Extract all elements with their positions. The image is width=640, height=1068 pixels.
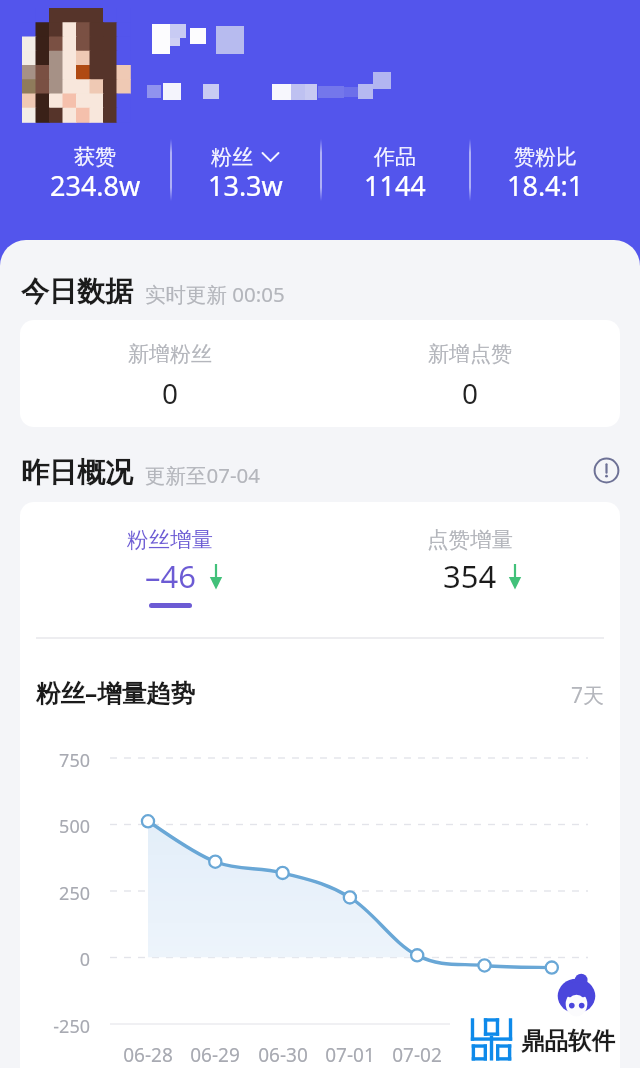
staticText: 500 [20,814,90,839]
staticText: 07-01 [316,1042,384,1068]
staticText: 18.4:1 [507,167,584,204]
button[interactable]: 作品 [320,144,470,207]
staticText: 赞粉比 [514,144,577,170]
staticText: 07-03 [451,1042,519,1068]
staticText: 粉丝增量 [127,526,213,553]
staticText: 06-28 [114,1042,182,1068]
staticText: –46 [145,555,196,597]
button[interactable]: 点赞增量 [320,526,620,603]
staticText: 鼎品软件 [521,1026,615,1056]
staticText: -250 [20,1014,90,1039]
staticText: 作品 [374,144,416,170]
staticText: 新增点赞 [428,341,512,367]
staticText: 354 [443,555,497,597]
staticText: 13.3w [208,167,283,204]
staticText: 昨日概况 [21,455,133,490]
staticText: 今日数据 [21,274,133,309]
staticText: 点赞增量 [427,526,513,553]
button[interactable]: 说明 [590,454,622,486]
staticText: 0 [20,947,90,972]
button[interactable]: 粉丝增量 [20,526,320,608]
staticText: 7天 [571,681,605,710]
staticText: 06-30 [249,1042,317,1068]
staticText: 粉丝 [211,144,253,170]
button[interactable]: 赞粉比 [470,144,620,207]
staticText: 06-29 [181,1042,249,1068]
staticText: 250 [20,881,90,906]
button[interactable]: 新增粉丝 [20,320,620,427]
staticText: 0 [462,374,479,412]
staticText: 更新至07-04 [145,461,261,489]
staticText: 实时更新 00:05 [145,280,285,308]
staticText: 750 [20,748,90,773]
button[interactable]: 粉丝 [170,144,320,207]
staticText: 07-04 [518,1042,586,1068]
staticText: 获赞 [74,144,116,170]
staticText: 1144 [364,167,426,204]
staticText: 新增粉丝 [128,341,212,367]
staticText: 粉丝–增量趋势 [36,676,196,709]
staticText: 234.8w [50,167,141,204]
button[interactable]: 获赞 [20,144,170,207]
staticText: 0 [162,374,179,412]
staticText: 07-02 [383,1042,451,1068]
button[interactable]: 头像 [22,8,130,122]
